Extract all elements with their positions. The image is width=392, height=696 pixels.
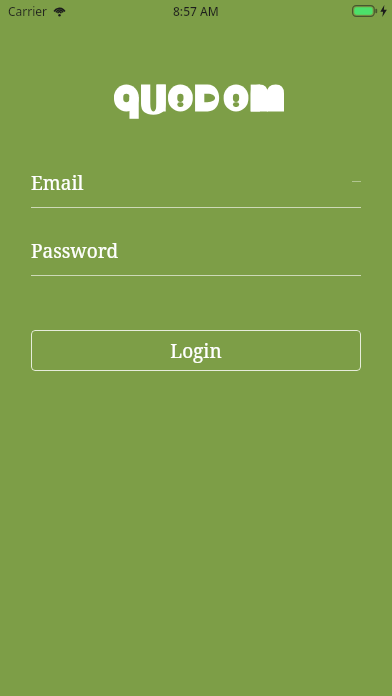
staticText: Carrier <box>8 3 48 19</box>
staticText: Email <box>31 170 84 196</box>
button[interactable]: Login <box>31 330 361 371</box>
staticText: Password <box>31 238 119 264</box>
staticText: 8:57 AM <box>173 3 219 19</box>
button[interactable]: Password <box>31 238 361 275</box>
button[interactable]: Email <box>31 170 361 207</box>
staticText: Login <box>170 338 222 364</box>
